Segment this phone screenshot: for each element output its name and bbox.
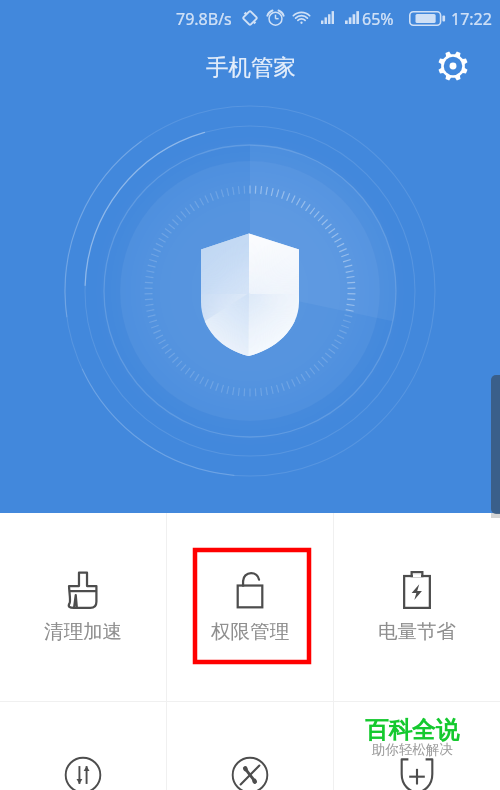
staticText: 清理加速 (44, 619, 122, 644)
button[interactable] (167, 702, 333, 790)
staticText: 百科全说 (365, 715, 459, 745)
staticText: 助你轻松解决 (372, 741, 453, 758)
button[interactable]: 手机管家 (206, 53, 296, 81)
button[interactable]: 电量节省 (334, 513, 500, 701)
staticText: 电量节省 (378, 619, 456, 644)
button[interactable]: 清理加速 (0, 513, 166, 701)
button[interactable] (0, 702, 166, 790)
staticText: 65% (362, 8, 394, 30)
button[interactable] (334, 702, 500, 790)
staticText: 79.8B/s (176, 8, 232, 30)
button[interactable]: 权限管理 (167, 513, 333, 701)
button[interactable]: Settings (438, 51, 468, 81)
staticText: 手机管家 (206, 53, 296, 81)
staticText: 17:22 (451, 8, 492, 30)
staticText: 权限管理 (211, 619, 289, 644)
